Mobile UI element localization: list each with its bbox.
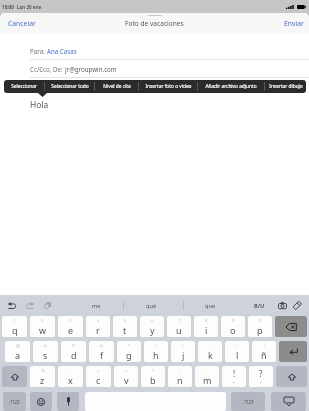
button[interactable]: = bbox=[114, 366, 138, 387]
button[interactable]: Pegar bbox=[39, 295, 55, 316]
button[interactable]: 2 bbox=[30, 316, 55, 337]
button[interactable]: € bbox=[61, 341, 86, 362]
staticText: . bbox=[260, 377, 262, 385]
staticText: 3 bbox=[69, 318, 72, 324]
staticText: a bbox=[15, 349, 21, 361]
button[interactable]: 9 bbox=[221, 316, 245, 337]
button[interactable]: @ bbox=[5, 341, 30, 362]
button[interactable]: * bbox=[117, 341, 141, 362]
button[interactable]: Intro bbox=[279, 341, 307, 362]
staticText: Enviar bbox=[284, 19, 304, 28]
staticText: - bbox=[70, 368, 72, 374]
staticText: k bbox=[208, 349, 213, 361]
button[interactable]: qué bbox=[124, 295, 179, 316]
button[interactable]: Rehacer bbox=[22, 295, 38, 316]
button[interactable]: : bbox=[195, 366, 219, 387]
button[interactable]: + bbox=[86, 366, 111, 387]
button[interactable]: Mayúsculas derecha bbox=[276, 366, 307, 387]
staticText: s bbox=[43, 349, 48, 361]
staticText: 9 bbox=[232, 318, 235, 324]
button[interactable]: & bbox=[89, 341, 114, 362]
button[interactable]: % bbox=[30, 366, 55, 387]
button[interactable]: 1 bbox=[2, 316, 27, 337]
button[interactable]: # bbox=[33, 341, 58, 362]
staticText: ) bbox=[182, 343, 184, 349]
staticText: Nivel de cita bbox=[103, 83, 131, 90]
staticText: 1 bbox=[13, 318, 16, 324]
staticText: # bbox=[44, 343, 47, 349]
button[interactable]: Seleccionar bbox=[4, 80, 44, 93]
button[interactable]: Cancelar bbox=[0, 15, 44, 33]
staticText: que bbox=[205, 302, 216, 310]
staticText: j bbox=[182, 349, 185, 361]
staticText: Insertar dibujo bbox=[269, 83, 303, 90]
staticText: r bbox=[96, 324, 100, 336]
button[interactable]: / bbox=[141, 366, 165, 387]
staticText: e bbox=[68, 324, 74, 336]
staticText: % bbox=[41, 368, 45, 374]
staticText: + bbox=[263, 343, 266, 349]
button[interactable]: ! bbox=[222, 366, 246, 387]
staticText: g bbox=[126, 349, 132, 361]
button[interactable]: + bbox=[252, 341, 276, 362]
button[interactable]: Insertar dibujo bbox=[265, 80, 306, 93]
button[interactable]: ) bbox=[171, 341, 195, 362]
button[interactable]: Nivel de cita bbox=[95, 80, 138, 93]
staticText: ñ bbox=[261, 349, 267, 361]
staticText: m bbox=[203, 374, 212, 386]
staticText: Para: bbox=[30, 47, 47, 55]
button[interactable]: .?123 bbox=[231, 392, 265, 411]
staticText: 8 bbox=[205, 318, 208, 324]
button[interactable]: Retroceso bbox=[275, 316, 307, 337]
button[interactable]: Enviar bbox=[276, 15, 309, 33]
staticText: x bbox=[68, 374, 73, 386]
staticText: ! bbox=[233, 368, 236, 379]
staticText: b bbox=[150, 374, 156, 386]
button[interactable]: Formato bbox=[247, 295, 271, 316]
staticText: Cancelar bbox=[8, 19, 36, 28]
button[interactable]: ( bbox=[144, 341, 168, 362]
staticText: , bbox=[233, 377, 235, 385]
button[interactable]: Adjuntar bbox=[289, 295, 305, 316]
staticText: d bbox=[71, 349, 77, 361]
button[interactable]: " bbox=[225, 341, 249, 362]
button[interactable]: ; bbox=[168, 366, 192, 387]
button[interactable]: ? bbox=[249, 366, 273, 387]
staticText: Lun 26 ene bbox=[17, 4, 42, 10]
button[interactable]: Insertar foto o vídeo bbox=[139, 80, 197, 93]
staticText: 7 bbox=[178, 318, 181, 324]
staticText: & bbox=[100, 343, 104, 349]
button[interactable]: .?123 bbox=[3, 392, 26, 411]
button[interactable]: 0 bbox=[248, 316, 272, 337]
button[interactable]: 3 bbox=[58, 316, 83, 337]
button[interactable]: que bbox=[183, 295, 238, 316]
button[interactable]: Deshacer bbox=[4, 295, 20, 316]
staticText: 5 bbox=[124, 318, 127, 324]
staticText: Cc/Cco, De: bbox=[30, 65, 65, 73]
button[interactable]: 5 bbox=[113, 316, 137, 337]
button[interactable]: Añadir archivo adjunto bbox=[198, 80, 264, 93]
button[interactable]: 4 bbox=[86, 316, 110, 337]
staticText: u bbox=[176, 324, 182, 336]
staticText: 10:00 bbox=[2, 4, 14, 10]
staticText: p bbox=[257, 324, 263, 336]
staticText: Hola bbox=[30, 99, 49, 110]
button[interactable]: 8 bbox=[194, 316, 218, 337]
button[interactable]: Cámara bbox=[274, 295, 290, 316]
button[interactable]: ' bbox=[198, 341, 222, 362]
button[interactable]: Seleccionar todo bbox=[45, 80, 94, 93]
button[interactable]: Mayúsculas bbox=[2, 366, 27, 387]
button[interactable]: - bbox=[58, 366, 83, 387]
staticText: 6 bbox=[151, 318, 154, 324]
button[interactable]: Emoji bbox=[30, 392, 52, 411]
staticText: Insertar foto o vídeo bbox=[145, 83, 192, 90]
staticText: € bbox=[72, 343, 75, 349]
button[interactable]: me bbox=[69, 295, 124, 316]
button[interactable]: Ocultar teclado bbox=[271, 392, 306, 411]
button[interactable]: Dictar bbox=[57, 392, 79, 411]
button[interactable]: 6 bbox=[140, 316, 164, 337]
staticText: me bbox=[92, 302, 101, 310]
button[interactable]: 7 bbox=[167, 316, 191, 337]
staticText: 4 bbox=[97, 318, 100, 324]
